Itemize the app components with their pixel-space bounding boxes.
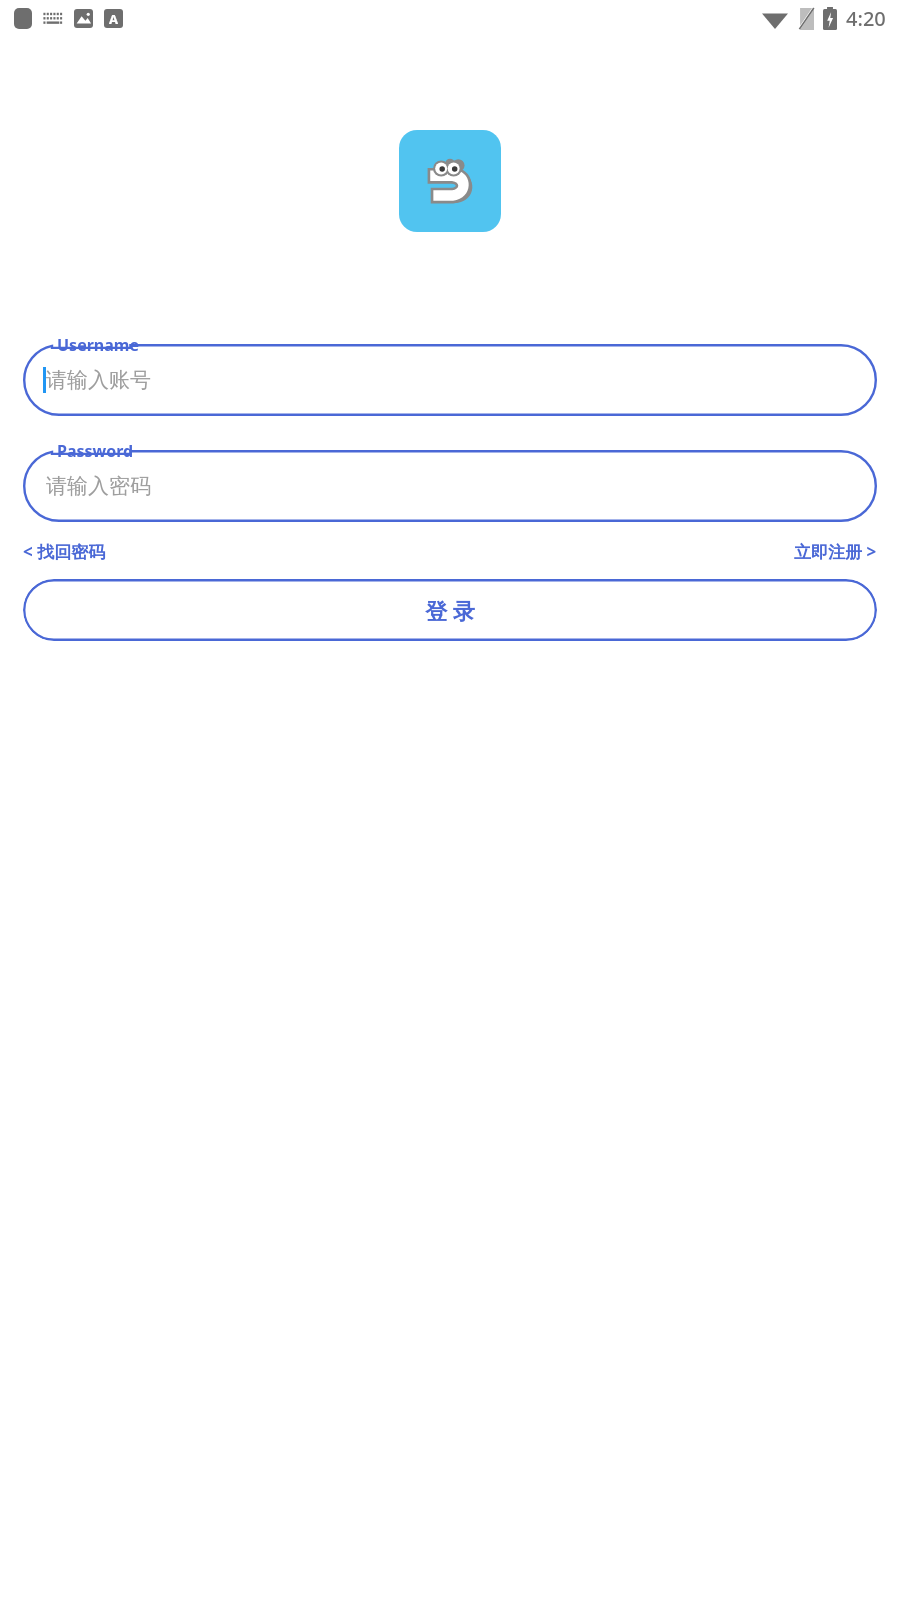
staticText: Username [57,334,139,356]
button[interactable]: 登 录 [23,579,877,641]
staticText: A [109,10,118,28]
button[interactable]: 立即注册 > [794,536,877,567]
staticText: 请输入账号 [46,367,151,393]
staticText: 立即注册 > [794,540,877,563]
staticText: 4:20 [846,5,886,32]
button[interactable]: < 找回密码 [23,536,106,567]
button[interactable]: Username [23,344,877,416]
staticText: 请输入密码 [46,473,151,499]
button[interactable]: Password [23,450,877,522]
staticText: < 找回密码 [23,540,106,563]
staticText: 登 录 [425,595,475,625]
staticText: Password [57,440,134,462]
